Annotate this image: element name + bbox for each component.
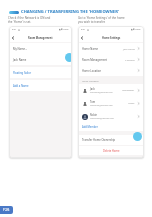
other: Open	[137, 47, 140, 50]
staticText: Admin	[128, 102, 135, 105]
staticText: jackname@domain.com	[90, 91, 113, 94]
staticText: robinname@domain.com	[90, 117, 114, 120]
button[interactable]: Room Management	[82, 54, 140, 65]
staticText: P 2/6	[3, 208, 10, 212]
staticText: ▲ ▮ 100%	[59, 28, 69, 31]
staticText: Robin	[90, 113, 98, 117]
other: Open	[137, 102, 140, 105]
button[interactable]: Transfer Home Ownership	[82, 135, 144, 145]
button[interactable]: Jack Name	[13, 54, 72, 65]
staticText: 9:41	[12, 28, 17, 31]
button[interactable]: Add Member	[82, 123, 144, 131]
staticText: tomname@domain.com	[90, 104, 113, 107]
staticText: Jack	[90, 87, 95, 91]
staticText: Jack Name	[13, 58, 27, 62]
staticText: Add a Name	[13, 84, 29, 88]
other: Open	[137, 115, 140, 118]
staticText: Home Settings	[102, 36, 121, 39]
button[interactable]: Back	[9, 34, 17, 42]
staticText: 9:41	[81, 28, 86, 31]
staticText: Tom	[90, 100, 96, 104]
staticText: Delete Home	[103, 149, 120, 153]
staticText: My Name...	[13, 47, 28, 51]
button[interactable]: Add a Name	[13, 80, 72, 91]
button[interactable]: Tom	[82, 97, 140, 110]
other: Open	[137, 58, 140, 61]
staticText: Homeowner	[122, 89, 135, 92]
staticText: Transfer Home Ownership	[82, 138, 116, 142]
staticText: 3 Rooms	[125, 58, 135, 61]
button[interactable]: Delete Home	[78, 146, 144, 155]
staticText: Add Member	[82, 125, 98, 129]
button[interactable]: Page number	[0, 206, 13, 214]
staticText: Check if the Network is ON and the 'Home…	[8, 16, 51, 24]
button[interactable]: My Name...	[13, 43, 72, 54]
staticText: Home Location	[82, 69, 102, 73]
button[interactable]: Robin	[82, 110, 140, 123]
button[interactable]: Section badge	[9, 11, 19, 14]
button[interactable]: Back	[78, 34, 86, 42]
staticText: Floating Sailor	[13, 71, 32, 75]
staticText: CHANGING / TRANSFERRING THE 'HOMEOWNER'	[21, 9, 119, 15]
other: Open	[137, 89, 140, 92]
other: Open	[137, 69, 140, 72]
staticText: Room Management	[82, 58, 108, 62]
staticText: HOME MEMBERS	[82, 80, 99, 83]
staticText: ▲ ▮ 100%	[131, 28, 141, 31]
staticText: Room Management	[28, 36, 53, 39]
staticText: Home Name	[82, 47, 98, 51]
staticText: Jack Home	[123, 47, 135, 50]
button[interactable]: Home Name	[82, 43, 140, 54]
button[interactable]: Floating Sailor	[13, 67, 72, 78]
staticText: Go to 'Home Settings' of the home you wi…	[78, 16, 125, 24]
button[interactable]: Jack	[82, 84, 140, 97]
button[interactable]: Home Location	[82, 65, 140, 76]
